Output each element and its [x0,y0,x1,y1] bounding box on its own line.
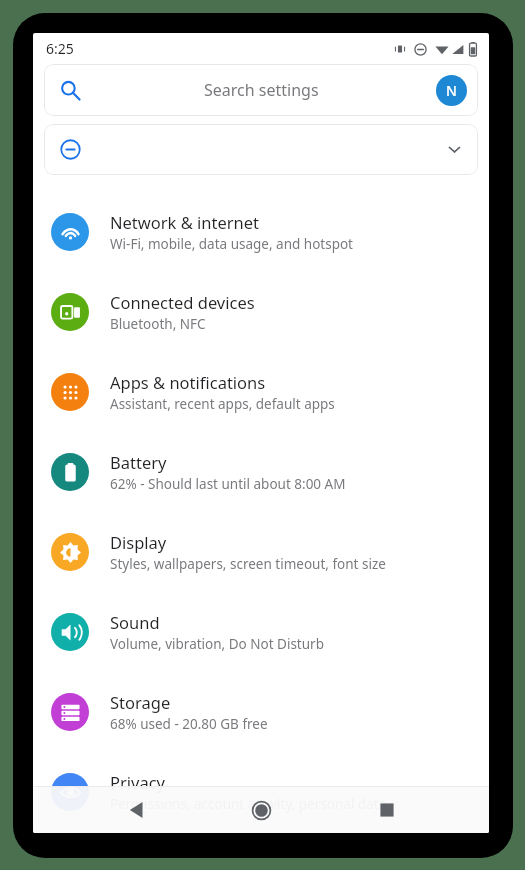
button[interactable]: Privacy [33,752,489,832]
staticText: Assistant, recent apps, default apps [110,395,335,413]
button[interactable]: Display [33,512,489,592]
staticText: Battery [110,451,167,473]
button[interactable]: Storage [33,672,489,752]
other: Do Not Disturb [60,139,81,160]
staticText: Permissions, account activity, personal … [110,795,387,813]
staticText: Bluetooth, NFC [110,315,206,333]
button[interactable]: Do Not Disturb [44,124,478,175]
staticText: Apps & notifications [110,371,266,393]
staticText: 6:25 [46,39,74,58]
staticText: Network & internet [110,211,260,233]
button[interactable]: Search [44,64,478,116]
button[interactable]: Recent apps [364,787,410,833]
other: Search [60,80,81,101]
staticText: Volume, vibration, Do Not Disturb [110,635,324,653]
staticText: Styles, wallpapers, screen timeout, font… [110,555,386,573]
staticText: Wi-Fi, mobile, data usage, and hotspot [110,235,353,253]
button[interactable]: Back [113,787,159,833]
other: Expand [446,141,463,158]
staticText: Display [110,531,167,553]
button[interactable]: Sound [33,592,489,672]
button[interactable]: Connected devices [33,272,489,352]
staticText: Storage [110,691,171,713]
staticText: 68% used - 20.80 GB free [110,715,268,733]
staticText: Search settings [204,79,319,101]
staticText: Privacy [110,771,166,793]
staticText: Sound [110,611,160,633]
staticText: 62% - Should last until about 8:00 AM [110,475,346,493]
button[interactable]: Account [436,75,467,106]
button[interactable]: Apps & notifications [33,352,489,432]
staticText: N [446,81,457,100]
button[interactable]: Home [238,787,284,833]
button[interactable]: Network & internet [33,192,489,272]
staticText: Connected devices [110,291,255,313]
button[interactable]: Battery [33,432,489,512]
